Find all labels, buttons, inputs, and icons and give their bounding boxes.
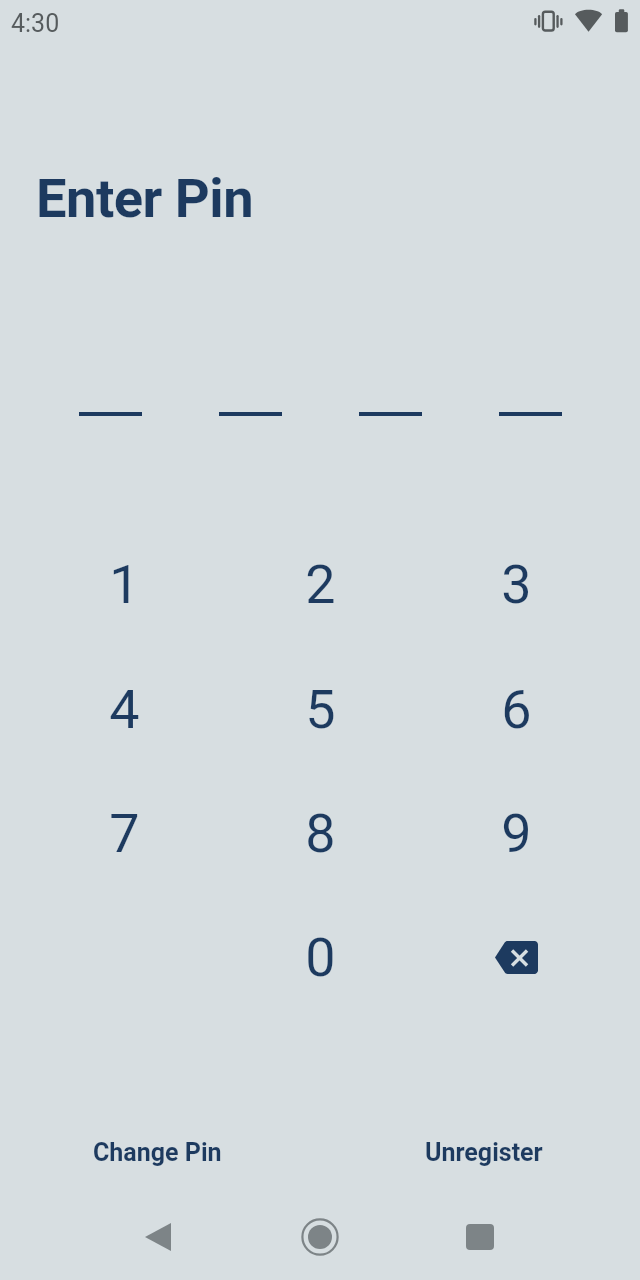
staticText: 2 xyxy=(305,553,336,616)
button[interactable]: Home xyxy=(292,1209,348,1265)
staticText: 6 xyxy=(501,678,532,741)
button[interactable]: 4 xyxy=(26,667,222,791)
staticText: Unregister xyxy=(425,1138,543,1167)
button[interactable]: Change Pin xyxy=(93,1138,222,1167)
staticText: Change Pin xyxy=(93,1138,222,1167)
staticText: 8 xyxy=(305,802,336,865)
staticText: 5 xyxy=(305,678,336,741)
staticText: 3 xyxy=(501,553,532,616)
staticText: 4:30 xyxy=(11,9,60,38)
other: Status icons xyxy=(534,9,628,33)
other: Backspace xyxy=(495,941,538,974)
button[interactable]: 2 xyxy=(222,542,418,666)
button[interactable]: Backspace xyxy=(418,915,614,1039)
staticText: Enter Pin xyxy=(36,167,254,231)
staticText: 9 xyxy=(501,802,532,865)
button[interactable]: Recents xyxy=(452,1209,508,1265)
staticText: 1 xyxy=(109,553,140,616)
button[interactable]: 1 xyxy=(26,542,222,666)
staticText: 0 xyxy=(305,926,336,989)
button[interactable]: Back xyxy=(130,1209,186,1265)
staticText: 4 xyxy=(109,678,140,741)
button[interactable]: 6 xyxy=(418,667,614,791)
staticText: 7 xyxy=(109,802,140,865)
button[interactable]: 0 xyxy=(222,915,418,1039)
button[interactable]: 9 xyxy=(418,791,614,915)
button[interactable]: 7 xyxy=(26,791,222,915)
button[interactable]: 8 xyxy=(222,791,418,915)
button[interactable]: 3 xyxy=(418,542,614,666)
button[interactable]: 5 xyxy=(222,667,418,791)
button[interactable]: Unregister xyxy=(425,1138,543,1167)
